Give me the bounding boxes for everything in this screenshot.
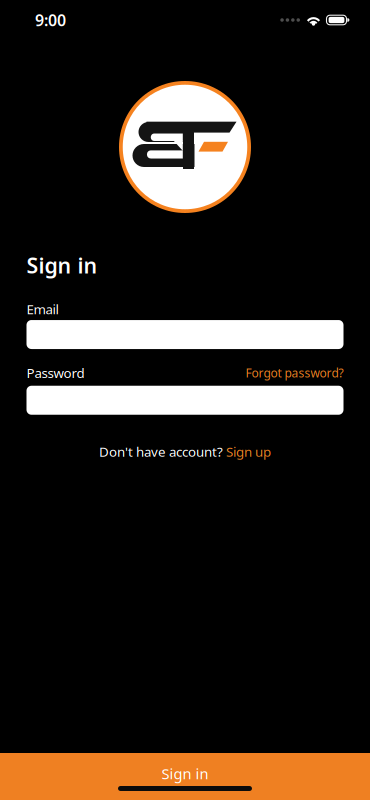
staticText: Sign in [26,251,97,279]
staticText: 9:00 [35,9,66,31]
staticText: Password [26,364,84,382]
staticText: Sign in [161,764,208,783]
button[interactable]: Sign up [226,443,271,460]
staticText: Don't have account? [99,443,226,460]
button[interactable]: Forgot password? [245,365,343,381]
button[interactable]: Sign in [0,753,370,800]
staticText: Sign up [226,443,271,460]
staticText: Forgot password? [245,365,343,381]
staticText: Email [26,300,58,318]
